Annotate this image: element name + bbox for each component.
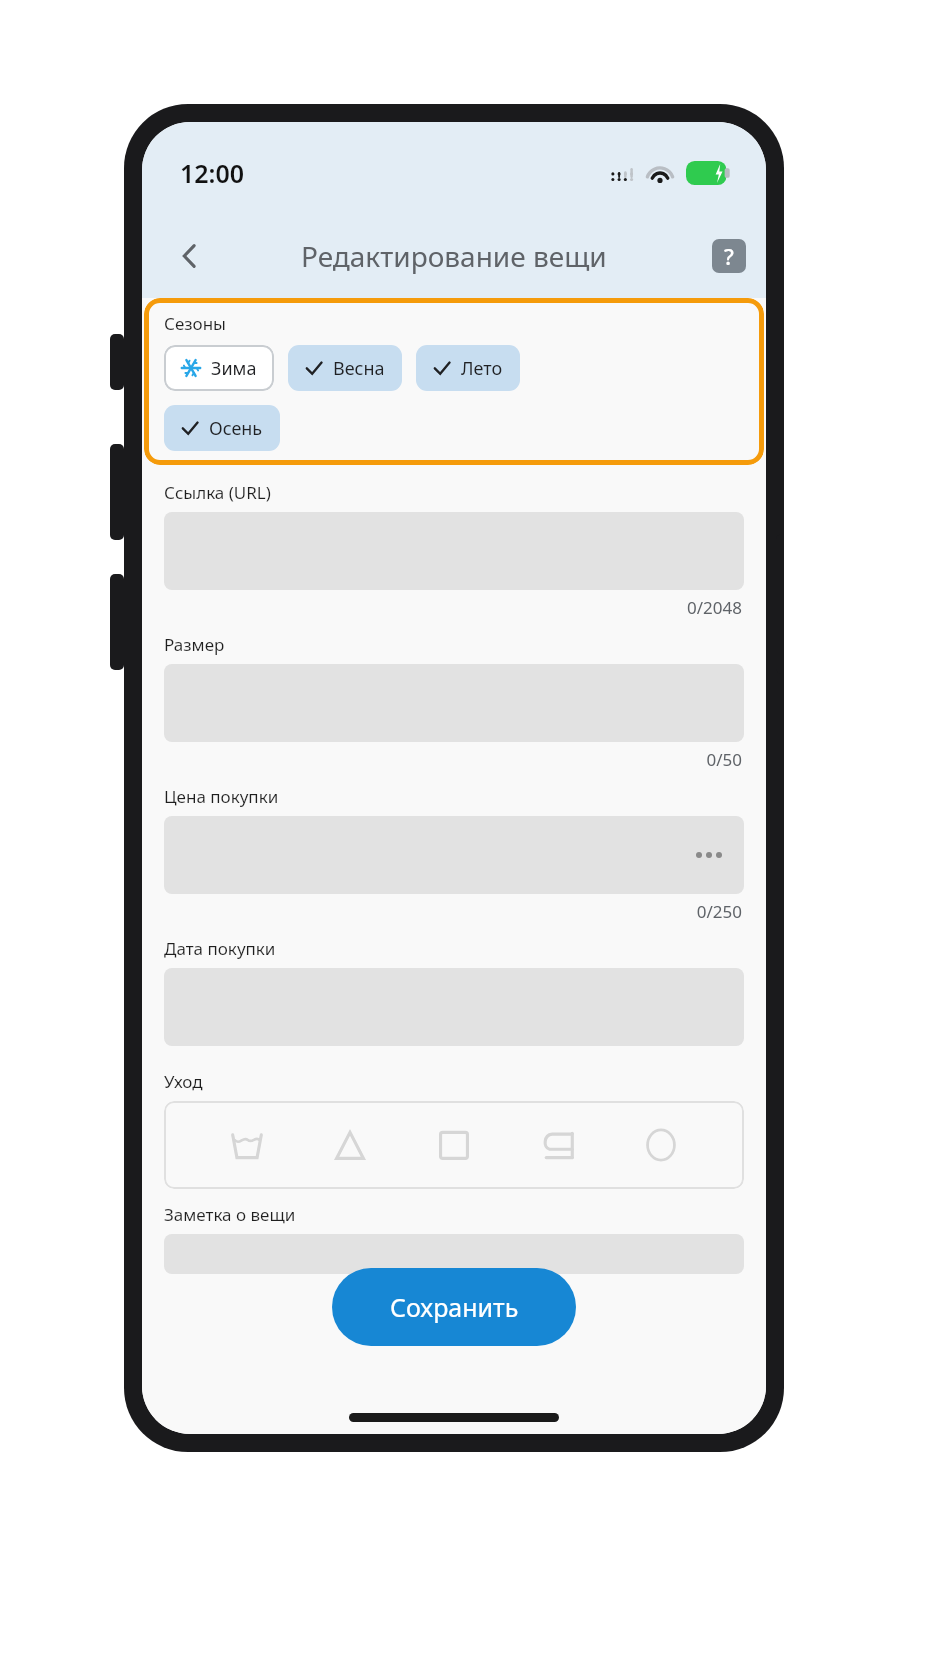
button[interactable]: Назад <box>164 230 216 282</box>
button[interactable]: Осень <box>164 405 280 451</box>
staticText: Лето <box>461 356 503 381</box>
staticText: 0/50 <box>142 748 742 771</box>
staticText: Уход <box>164 1070 203 1093</box>
button[interactable]: Лето <box>416 345 520 391</box>
staticText: Сохранить <box>390 1290 519 1324</box>
button[interactable]: Зима <box>164 345 274 391</box>
button[interactable]: Справка <box>712 239 746 273</box>
staticText: 0/2048 <box>142 596 742 619</box>
staticText: Сезоны <box>164 312 226 335</box>
staticText: Дата покупки <box>164 937 276 960</box>
staticText: ? <box>724 241 734 271</box>
staticText: Ссылка (URL) <box>164 481 271 504</box>
button[interactable]: Символы ухода <box>164 1101 744 1189</box>
staticText: 12:00 <box>180 156 245 190</box>
button[interactable]: Сохранить <box>332 1268 576 1346</box>
staticText: Осень <box>209 416 263 441</box>
staticText: Заметка о вещи <box>164 1203 296 1226</box>
staticText: Весна <box>333 356 385 381</box>
button[interactable]: Весна <box>288 345 402 391</box>
staticText: Зима <box>211 356 257 381</box>
staticText: 0/250 <box>142 900 742 923</box>
staticText: Размер <box>164 633 225 656</box>
button[interactable] <box>164 1234 744 1274</box>
button[interactable] <box>164 816 744 894</box>
staticText: Цена покупки <box>164 785 279 808</box>
staticText: Редактирование вещи <box>301 237 607 275</box>
